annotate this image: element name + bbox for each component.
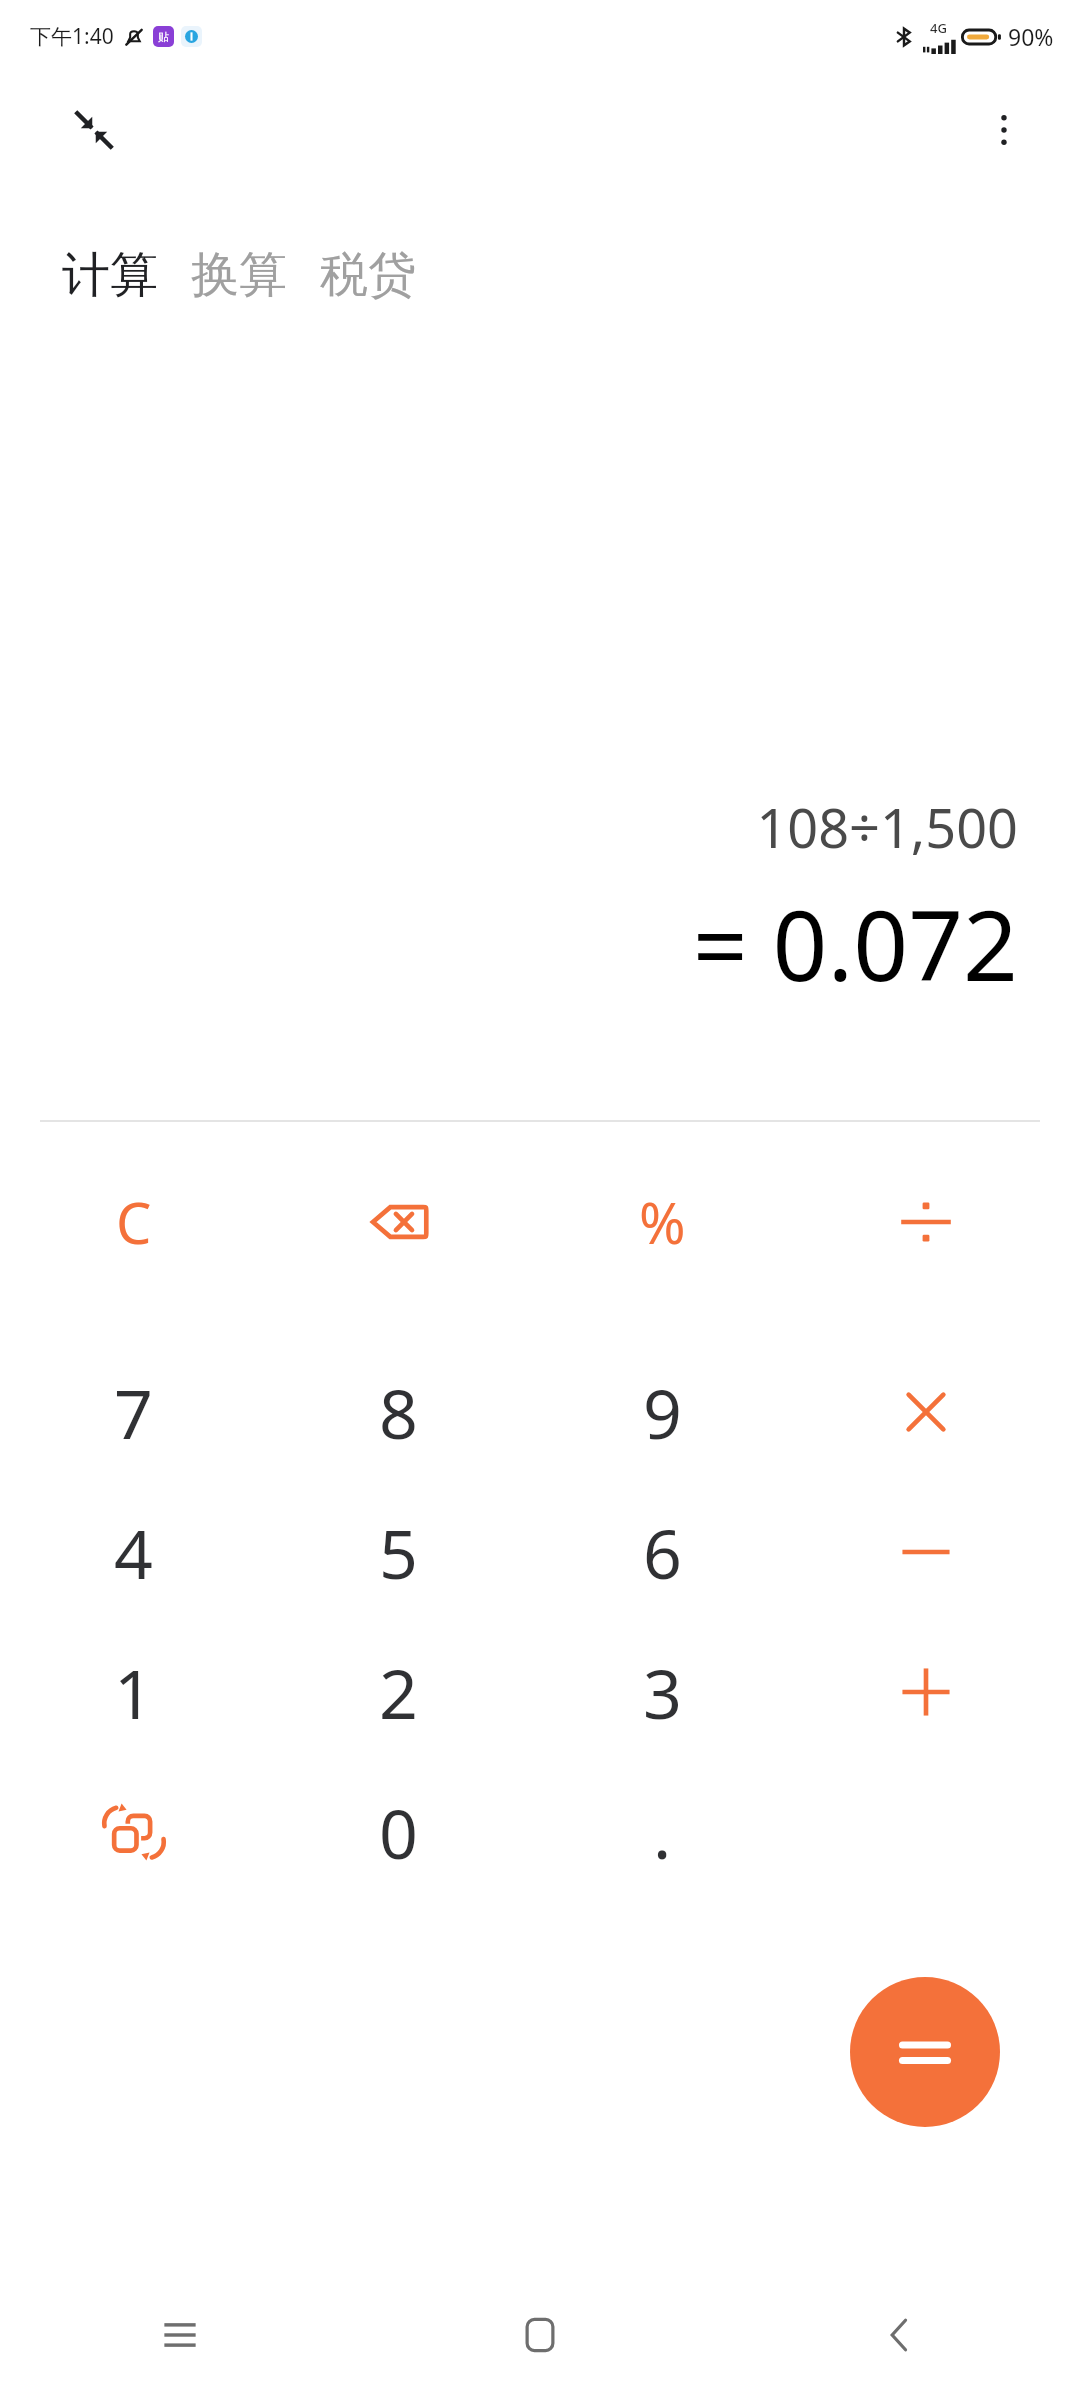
button[interactable]: Collapse	[62, 98, 126, 162]
staticText: .	[653, 1786, 672, 1879]
staticText: 税贷	[320, 245, 416, 305]
button[interactable]: Equals	[850, 1977, 1000, 2127]
button[interactable]: Minus	[793, 1482, 1058, 1622]
button[interactable]: 8	[266, 1342, 531, 1482]
button[interactable]: %	[530, 1152, 795, 1292]
button[interactable]: Recent apps	[0, 2270, 360, 2400]
button[interactable]: 3	[530, 1622, 795, 1762]
staticText: 9	[643, 1366, 682, 1459]
staticText: %	[639, 1184, 686, 1260]
button[interactable]: 0	[266, 1762, 531, 1902]
button[interactable]: 7	[1, 1342, 266, 1482]
staticText: 90%	[1008, 21, 1054, 52]
staticText: 3	[643, 1646, 682, 1739]
staticText: 0	[379, 1786, 418, 1879]
button[interactable]: 2	[266, 1622, 531, 1762]
staticText: C	[116, 1184, 152, 1260]
button[interactable]: Plus	[793, 1622, 1058, 1762]
button[interactable]: C	[1, 1152, 266, 1292]
button[interactable]: Convert units	[1, 1762, 266, 1902]
staticText: 8	[379, 1366, 418, 1459]
button[interactable]: Back	[720, 2270, 1080, 2400]
button[interactable]: 税贷	[320, 245, 416, 305]
staticText: 贴	[158, 30, 169, 44]
staticText: 6	[643, 1506, 682, 1599]
button[interactable]: 换算	[191, 245, 287, 305]
button[interactable]: 6	[530, 1482, 795, 1622]
staticText: 2	[379, 1646, 418, 1739]
staticText: 5	[379, 1506, 418, 1599]
button[interactable]: More options	[972, 98, 1036, 162]
staticText: 换算	[191, 245, 287, 305]
staticText: 108÷1,500	[756, 790, 1018, 864]
button[interactable]: 1	[1, 1622, 266, 1762]
button[interactable]: Home	[360, 2270, 720, 2400]
staticText: = 0.072	[692, 878, 1018, 1009]
button[interactable]: .	[530, 1762, 795, 1902]
button[interactable]: 4	[1, 1482, 266, 1622]
button[interactable]: Divide	[793, 1152, 1058, 1292]
staticText: 4G	[930, 19, 947, 37]
button[interactable]: 计算	[62, 245, 158, 305]
staticText: 计算	[62, 245, 158, 305]
button[interactable]: 5	[266, 1482, 531, 1622]
button[interactable]: 9	[530, 1342, 795, 1482]
staticText: 1	[114, 1646, 153, 1739]
button[interactable]: Multiply	[793, 1342, 1058, 1482]
staticText: 下午1:40	[30, 22, 114, 51]
staticText: 4	[114, 1506, 153, 1599]
staticText: 7	[114, 1366, 153, 1459]
button[interactable]: Backspace	[266, 1152, 531, 1292]
